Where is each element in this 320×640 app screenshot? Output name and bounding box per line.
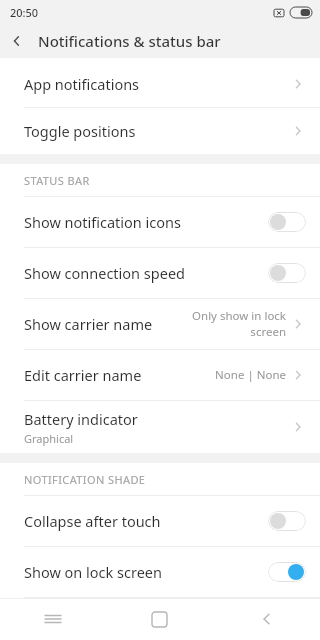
staticText: Show on lock screen [24,562,162,582]
staticText: Graphical [24,431,74,446]
button[interactable]: Back [0,24,34,58]
staticText: Collapse after touch [24,511,161,531]
staticText: NOTIFICATION SHADE [24,472,146,487]
button[interactable]: Menu [0,598,106,640]
staticText: Show connection speed [24,263,185,283]
staticText: STATUS BAR [24,173,90,188]
button[interactable]: Back [213,598,320,640]
button[interactable]: Show on lock screen [0,547,320,597]
staticText: None | None [190,367,286,383]
button[interactable] [268,212,306,232]
button[interactable]: Show connection speed [0,248,320,298]
button[interactable]: Collapse after touch [0,496,320,546]
staticText: Notifications & status bar [38,31,221,51]
button[interactable] [268,562,306,582]
staticText: Only show in lock screen [190,308,286,340]
staticText: Battery indicator [24,409,138,429]
staticText: 20:50 [10,5,39,20]
button[interactable]: Edit carrier name [0,350,320,400]
button[interactable]: Show notification icons [0,197,320,247]
button[interactable]: Show carrier name [0,299,320,349]
button[interactable] [268,263,306,283]
button[interactable]: Home [106,598,213,640]
button[interactable]: Battery indicator [0,401,320,453]
button[interactable] [268,511,306,531]
staticText: Show notification icons [24,212,181,232]
staticText: Show carrier name [24,314,153,334]
staticText: Toggle positions [24,121,136,141]
staticText: App notifications [24,74,140,94]
button[interactable]: App notifications [0,61,320,107]
staticText: Edit carrier name [24,365,142,385]
button[interactable]: Toggle positions [0,108,320,154]
